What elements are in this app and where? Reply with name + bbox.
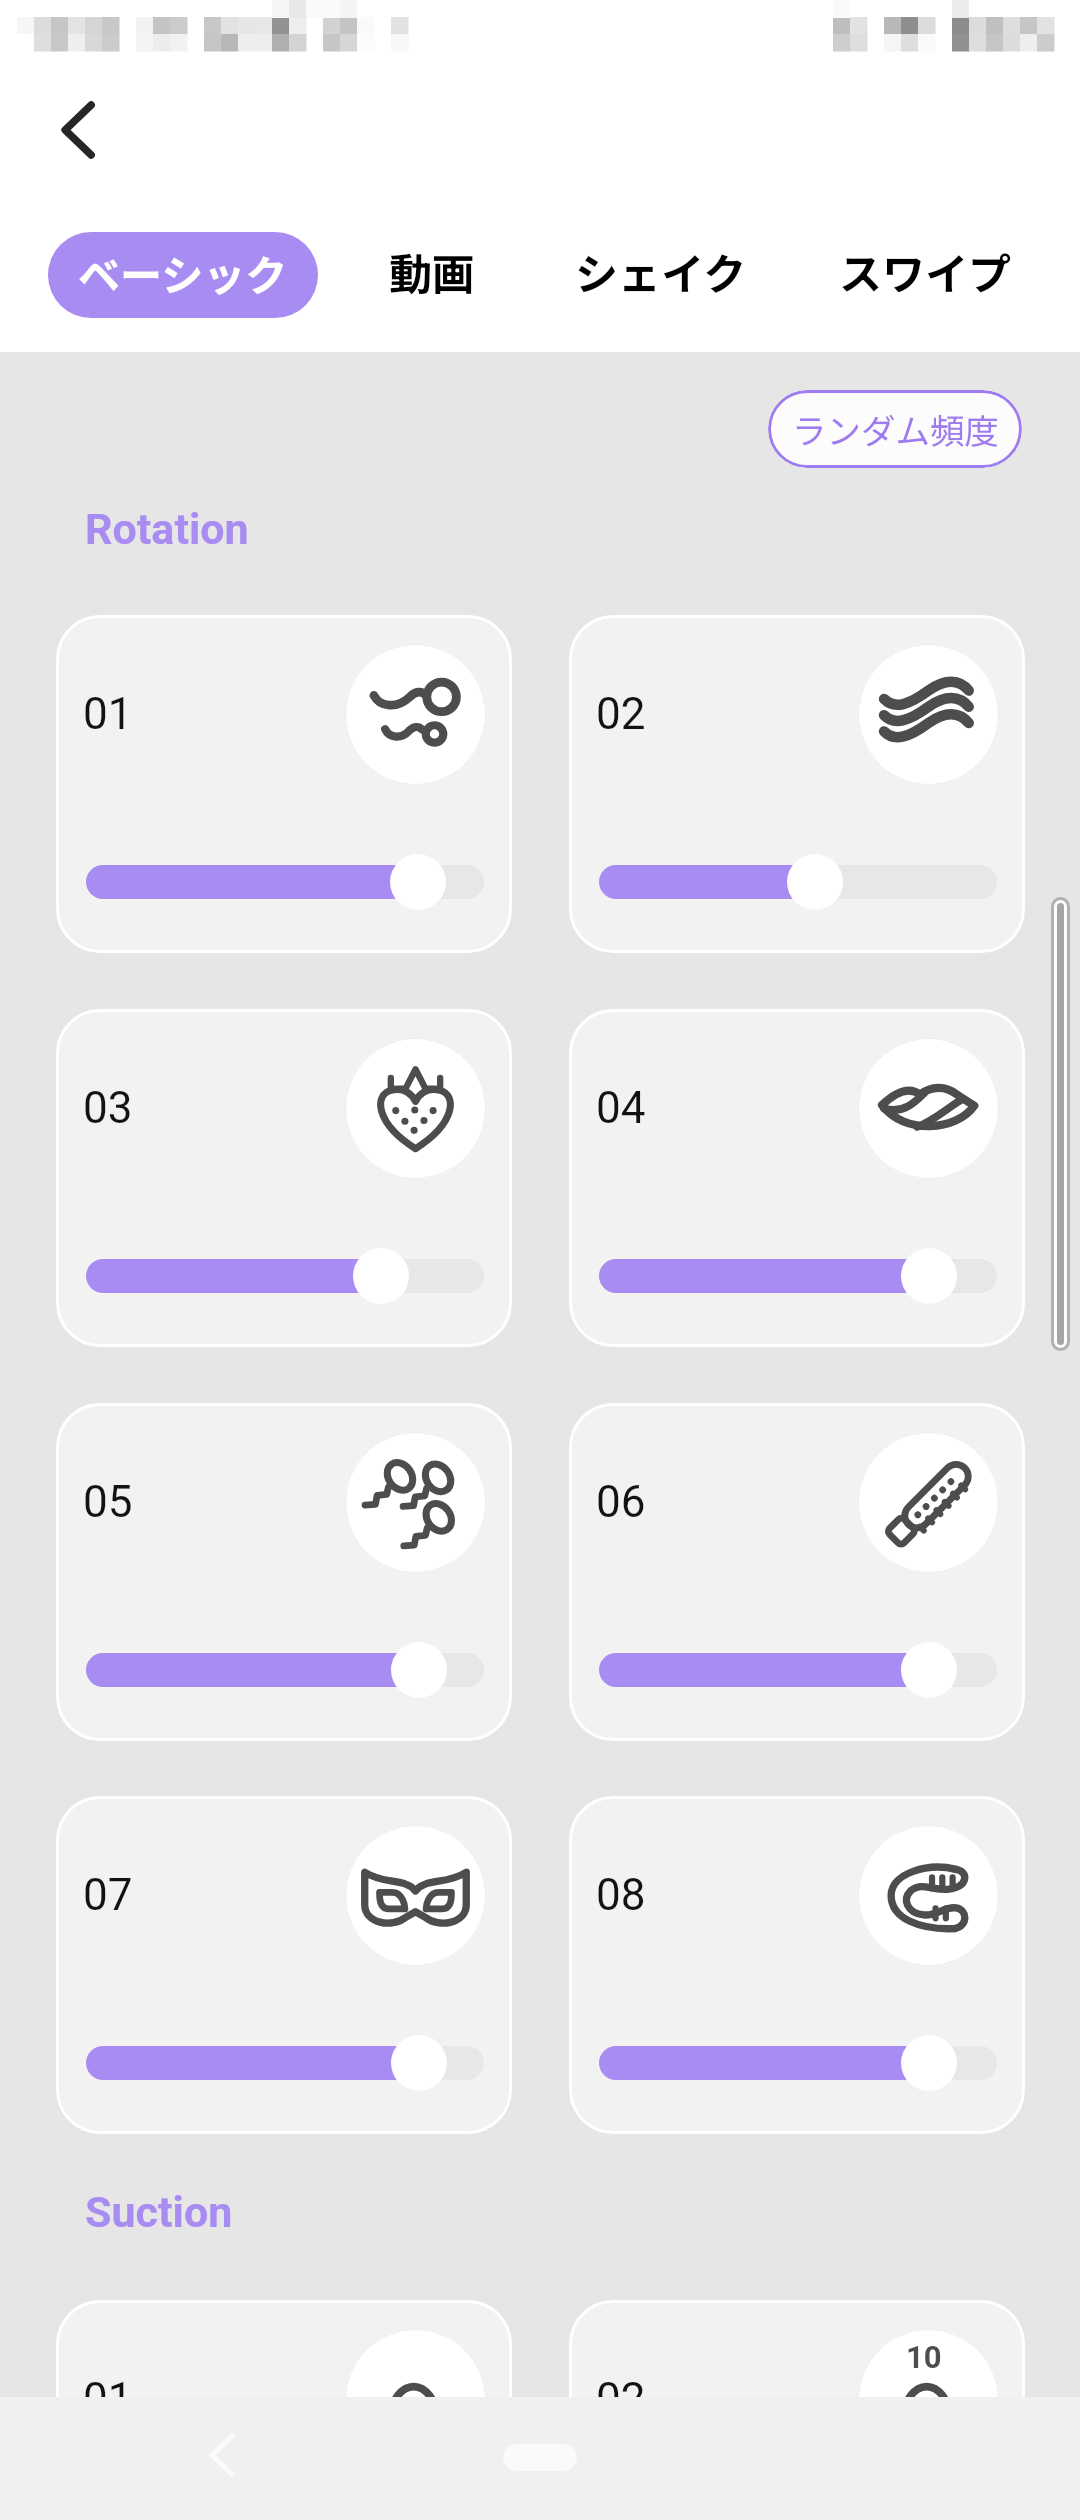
- staticText: スワイプ: [839, 240, 1011, 302]
- button[interactable]: 05: [56, 1403, 512, 1741]
- button[interactable]: 07: [56, 1796, 512, 2134]
- staticText: 07: [83, 1869, 133, 1921]
- staticText: 04: [596, 1082, 646, 1134]
- button[interactable]: 02: [569, 2300, 1025, 2520]
- button[interactable]: 08: [569, 1796, 1025, 2134]
- staticText: Rotation: [85, 504, 249, 554]
- button[interactable]: ベーシック: [48, 232, 318, 318]
- staticText: 10: [906, 2339, 942, 2375]
- button[interactable]: 06: [569, 1403, 1025, 1741]
- staticText: ベーシック: [78, 242, 288, 303]
- staticText: シェイク: [575, 240, 747, 302]
- button[interactable]: 01: [56, 615, 512, 953]
- button[interactable]: ランダム頻度: [768, 390, 1022, 468]
- staticText: 06: [596, 1476, 646, 1528]
- staticText: Suction: [85, 2187, 233, 2237]
- button[interactable]: シェイク: [551, 228, 771, 314]
- button[interactable]: 01: [56, 2300, 512, 2520]
- staticText: 03: [83, 1082, 133, 1134]
- button[interactable]: 04: [569, 1009, 1025, 1347]
- staticText: 02: [596, 2373, 646, 2425]
- button[interactable]: Back: [28, 78, 132, 182]
- button[interactable]: 動画: [365, 228, 499, 314]
- staticText: ランダム頻度: [792, 404, 999, 454]
- staticText: 01: [83, 688, 133, 740]
- button[interactable]: スワイプ: [815, 228, 1035, 314]
- staticText: 08: [596, 1869, 646, 1921]
- staticText: 02: [596, 688, 646, 740]
- button[interactable]: 03: [56, 1009, 512, 1347]
- staticText: 動画: [389, 240, 475, 302]
- button[interactable]: 02: [569, 615, 1025, 953]
- staticText: 01: [83, 2373, 133, 2425]
- staticText: 05: [83, 1476, 133, 1528]
